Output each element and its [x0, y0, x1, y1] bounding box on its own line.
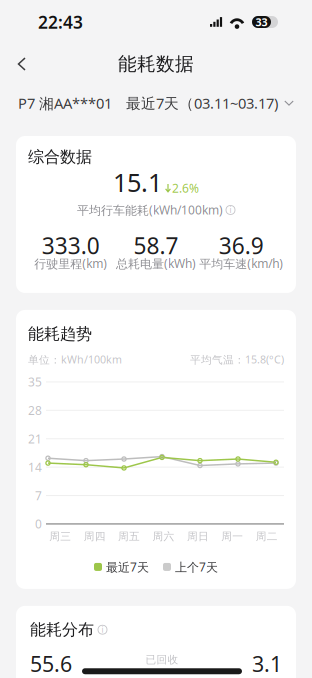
staticText: 能耗数据: [118, 52, 194, 75]
staticText: 21: [28, 431, 42, 447]
staticText: 平均车速(km/h): [199, 255, 283, 271]
staticText: 55.6: [30, 649, 72, 678]
staticText: 最近7天: [106, 559, 149, 575]
staticText: 综合数据: [28, 147, 92, 167]
staticText: 14: [28, 459, 42, 475]
staticText: 36.9: [219, 230, 264, 260]
staticText: 35: [28, 374, 42, 390]
staticText: 58.7: [133, 230, 178, 260]
staticText: 3.1: [252, 649, 282, 678]
staticText: 最近7天（03.11~03.17): [126, 93, 278, 113]
staticText: 周日: [187, 530, 209, 543]
button[interactable]: P7 湘AA***01: [18, 93, 112, 113]
staticText: 0: [35, 516, 42, 532]
staticText: 周一: [221, 530, 243, 543]
staticText: 7: [35, 488, 42, 503]
staticText: 33: [255, 15, 267, 29]
staticText: 333.0: [42, 230, 100, 260]
staticText: 行驶里程(km): [34, 255, 107, 271]
staticText: 平均气温：15.8(°C): [190, 352, 284, 367]
staticText: 总耗电量(kWh): [116, 255, 196, 271]
staticText: i: [101, 624, 103, 635]
staticText: 上个7天: [175, 559, 218, 575]
staticText: 能耗分布: [30, 620, 94, 640]
staticText: 2.6%: [172, 180, 199, 196]
staticText: 周三: [49, 530, 71, 543]
staticText: 能耗趋势: [28, 324, 92, 344]
staticText: P7 湘AA***01: [18, 93, 112, 113]
staticText: 已回收: [145, 653, 178, 666]
staticText: 单位：kWh/100km: [28, 352, 122, 367]
staticText: 平均行车能耗(kWh/100km): [77, 202, 223, 218]
staticText: 22:43: [38, 10, 83, 33]
staticText: 周六: [152, 530, 174, 543]
staticText: 周二: [256, 530, 278, 543]
staticText: 15.1: [113, 165, 162, 199]
staticText: i: [229, 205, 231, 215]
button[interactable]: 最近7天（03.11~03.17): [126, 93, 294, 113]
staticText: 周五: [118, 530, 140, 543]
button[interactable]: Back: [0, 44, 44, 84]
staticText: 周四: [84, 530, 106, 543]
staticText: 28: [28, 402, 42, 418]
